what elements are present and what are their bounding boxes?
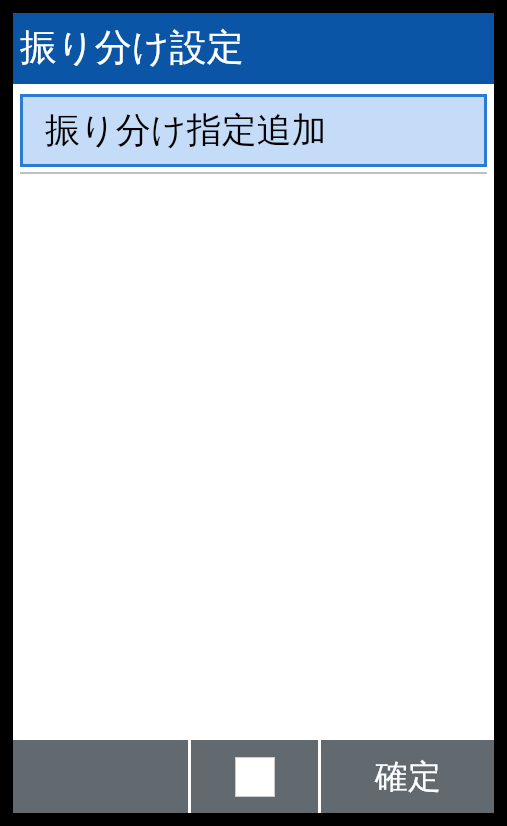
- button[interactable]: 確定: [321, 740, 494, 813]
- staticText: 確定: [375, 756, 441, 798]
- staticText: 振り分け指定追加: [45, 108, 327, 152]
- staticText: 振り分け設定: [20, 24, 244, 71]
- button[interactable]: 振り分け指定追加: [20, 94, 487, 167]
- button[interactable]: Select: [191, 740, 318, 813]
